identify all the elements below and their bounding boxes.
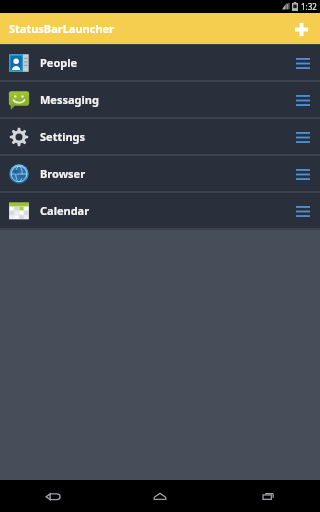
button[interactable]: Reorder Browser <box>292 163 314 185</box>
button[interactable]: Add <box>288 16 314 42</box>
button[interactable]: People <box>0 45 320 80</box>
button[interactable]: Home <box>106 480 213 512</box>
button[interactable]: Messaging <box>0 82 320 117</box>
button[interactable]: Reorder People <box>292 52 314 74</box>
button[interactable]: Settings <box>0 119 320 154</box>
button[interactable]: Calendar <box>0 193 320 228</box>
button[interactable]: Reorder Settings <box>292 126 314 148</box>
staticText: Browser <box>40 166 86 181</box>
button[interactable]: Back <box>0 480 106 512</box>
button[interactable]: Reorder Calendar <box>292 200 314 222</box>
staticText: Messaging <box>40 92 99 107</box>
staticText: StatusBarLauncher <box>9 21 115 36</box>
staticText: Settings <box>40 129 86 144</box>
staticText: People <box>40 55 78 70</box>
button[interactable]: Recent apps <box>213 480 320 512</box>
button[interactable]: Browser <box>0 156 320 191</box>
staticText: 1:32 <box>301 1 317 12</box>
button[interactable]: Reorder Messaging <box>292 89 314 111</box>
staticText: Calendar <box>40 203 90 218</box>
